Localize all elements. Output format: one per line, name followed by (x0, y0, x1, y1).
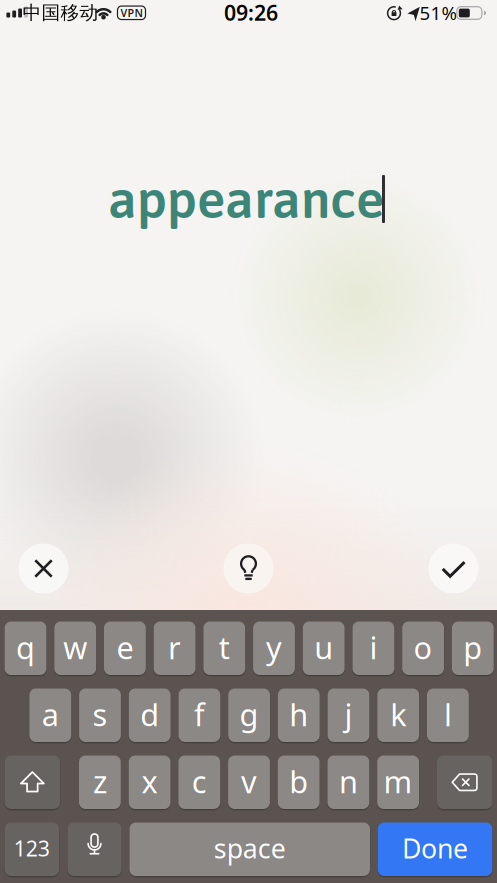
button[interactable]: s (79, 688, 121, 742)
staticText: d (140, 694, 159, 735)
staticText: b (289, 761, 308, 802)
button[interactable] (67, 822, 121, 876)
staticText: v (241, 761, 257, 802)
button[interactable]: o (402, 621, 444, 675)
staticText: f (194, 694, 205, 735)
button[interactable]: g (228, 688, 270, 742)
staticText: s (92, 694, 107, 735)
button[interactable]: t (203, 621, 245, 675)
staticText: p (463, 627, 482, 668)
button[interactable]: x (129, 755, 170, 809)
button[interactable]: n (327, 755, 369, 809)
button[interactable]: i (352, 621, 394, 675)
button[interactable]: y (253, 621, 295, 675)
button[interactable]: w (54, 621, 96, 675)
staticText: a (42, 694, 59, 735)
button[interactable]: b (278, 755, 320, 809)
button[interactable]: space (129, 822, 370, 876)
button[interactable]: q (5, 621, 46, 675)
button[interactable]: j (328, 688, 369, 742)
staticText: i (369, 627, 377, 668)
button[interactable]: Done (378, 822, 492, 876)
staticText: 123 (14, 834, 50, 862)
button[interactable]: p (452, 621, 494, 675)
staticText: h (289, 694, 308, 735)
staticText: l (444, 694, 452, 735)
button[interactable]: z (79, 755, 121, 809)
staticText: g (240, 694, 259, 735)
button[interactable]: e (104, 621, 146, 675)
button[interactable]: f (178, 688, 220, 742)
staticText: appearance (108, 169, 384, 229)
staticText: n (339, 761, 358, 802)
staticText: Done (402, 830, 468, 866)
staticText: z (93, 761, 107, 802)
staticText: j (344, 694, 352, 735)
staticText: x (142, 761, 158, 802)
staticText: space (214, 830, 286, 866)
staticText: k (390, 694, 406, 735)
staticText: u (314, 627, 333, 668)
staticText: 09:26 (224, 0, 278, 27)
staticText: y (266, 627, 282, 668)
button[interactable]: k (377, 688, 419, 742)
button[interactable] (428, 543, 478, 593)
staticText: c (192, 761, 207, 802)
staticText: t (219, 627, 230, 668)
staticText: e (116, 627, 133, 668)
button[interactable] (5, 755, 60, 809)
button[interactable]: v (228, 755, 270, 809)
button[interactable]: h (278, 688, 320, 742)
button[interactable] (223, 543, 273, 593)
button[interactable]: c (178, 755, 220, 809)
button[interactable]: a (29, 688, 71, 742)
staticText: r (168, 627, 181, 668)
staticText: 中国移动 (22, 1, 98, 24)
button[interactable]: u (303, 621, 345, 675)
staticText: w (63, 627, 87, 668)
button[interactable]: r (154, 621, 195, 675)
staticText: o (414, 627, 433, 668)
button[interactable]: 123 (5, 822, 59, 876)
button[interactable] (18, 543, 68, 593)
staticText: 51% (419, 0, 457, 25)
button[interactable] (437, 755, 492, 809)
button[interactable]: l (427, 688, 469, 742)
button[interactable]: m (377, 755, 419, 809)
staticText: m (384, 761, 413, 802)
staticText: q (16, 627, 35, 668)
staticText: VPN (120, 6, 142, 20)
button[interactable]: d (129, 688, 171, 742)
